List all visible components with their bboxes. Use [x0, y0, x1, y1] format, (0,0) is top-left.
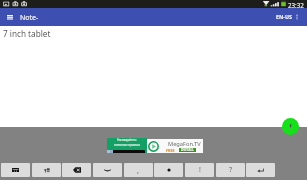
- button[interactable]: dot: [154, 163, 183, 177]
- staticText: INSTALL: [181, 148, 194, 152]
- staticText: !: [199, 165, 201, 175]
- button[interactable]: More options: [291, 11, 303, 23]
- button[interactable]: Navigation menu: [1, 8, 19, 26]
- staticText: EN-US: [276, 13, 292, 20]
- button[interactable]: New note: [282, 118, 299, 135]
- staticText: MegaFon.TV: [168, 140, 201, 148]
- staticText: Наслаждайтесь: [117, 138, 137, 142]
- button[interactable]: bksp: [62, 163, 91, 177]
- staticText: ,: [137, 165, 140, 175]
- staticText: отличным сериалом: [114, 143, 140, 147]
- button[interactable]: tab: [32, 163, 61, 177]
- button[interactable]: comma: [124, 163, 153, 177]
- staticText: ?: [229, 165, 233, 175]
- button[interactable]: Наслаждайтесь: [107, 138, 203, 154]
- button[interactable]: under: [93, 163, 122, 177]
- staticText: FREE: [166, 148, 175, 153]
- button[interactable]: enter: [246, 163, 275, 177]
- button[interactable]: kb: [1, 163, 30, 177]
- staticText: Note-: [20, 13, 39, 23]
- staticText: 7 inch tablet: [3, 28, 51, 39]
- button[interactable]: excl: [185, 163, 214, 177]
- button[interactable]: ques: [216, 163, 245, 177]
- staticText: 23:32: [288, 1, 304, 9]
- button[interactable]: EN-US: [274, 12, 294, 21]
